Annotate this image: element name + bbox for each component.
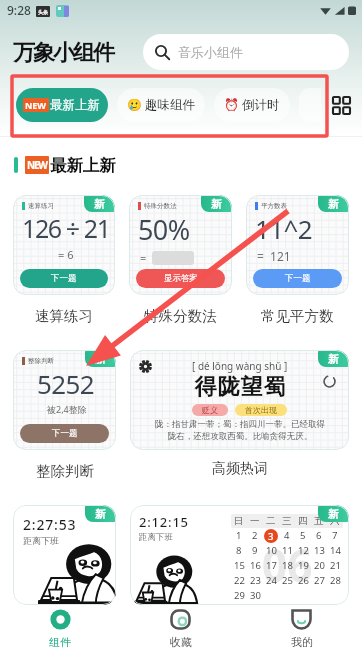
staticText: 15 xyxy=(234,559,245,572)
staticText: = 121 xyxy=(257,248,291,264)
staticText: 7 xyxy=(332,529,338,542)
staticText: 19 xyxy=(298,559,309,572)
staticText: 贬义 xyxy=(202,405,218,415)
staticText: 13 xyxy=(314,544,325,557)
button[interactable]: 新 xyxy=(13,350,116,450)
staticText: 速算练习 xyxy=(28,202,54,210)
staticText: 音乐小组件 xyxy=(178,44,243,60)
staticText: 高频热词 xyxy=(212,460,268,478)
button[interactable]: 新 xyxy=(13,505,116,605)
staticText: 18 xyxy=(282,559,293,572)
button[interactable]: 组件 xyxy=(0,605,120,653)
staticText: 常见平方数 xyxy=(261,307,334,325)
staticText: 趣味组件 xyxy=(145,97,195,113)
staticText: 126 ÷ 21 xyxy=(22,211,108,245)
staticText: 9:28 xyxy=(7,2,31,18)
button[interactable]: NEW xyxy=(16,88,108,122)
staticText: 新 xyxy=(95,507,106,521)
staticText: 11 xyxy=(282,544,293,557)
button[interactable]: 显示答案 xyxy=(136,269,225,288)
staticText: 平方数表 xyxy=(261,202,287,210)
staticText: 26 xyxy=(298,574,309,587)
staticText: 得陇望蜀 xyxy=(194,373,286,401)
staticText: 距离下班 xyxy=(23,535,59,546)
staticText: 新 xyxy=(328,507,339,521)
button[interactable]: 2:12:15 xyxy=(130,505,349,605)
staticText: 4 xyxy=(284,529,290,542)
staticText: 速算练习 xyxy=(35,307,93,325)
staticText: 头条 xyxy=(38,9,48,15)
staticText: 25 xyxy=(282,574,293,587)
staticText: = 6 xyxy=(58,247,74,262)
staticText: 五 xyxy=(314,515,324,527)
staticText: 整除判断 xyxy=(28,357,54,365)
button[interactable]: 下一题 xyxy=(20,424,109,443)
staticText: 9 xyxy=(252,544,258,557)
button[interactable]: 新 xyxy=(13,195,115,295)
staticText: 27 xyxy=(314,574,325,587)
staticText: 整除判断 xyxy=(36,462,94,480)
staticText: 5 xyxy=(300,529,306,542)
staticText: 下一题 xyxy=(51,273,77,284)
button[interactable]: 我的 xyxy=(241,605,362,653)
staticText: 12 xyxy=(298,544,309,557)
staticText: 06 xyxy=(262,535,313,595)
staticText: 14 xyxy=(330,544,341,557)
staticText: 3 xyxy=(268,530,274,543)
staticText: 陇：指甘肃一带；蜀：指四川一带。已经取得 陇右，还想攻取西蜀。比喻贪得无厌。 xyxy=(155,419,325,441)
button[interactable]: All categories xyxy=(324,88,358,122)
staticText: 8 xyxy=(236,544,242,557)
staticText: 特殊分数法 xyxy=(144,202,177,210)
staticText: 日 xyxy=(234,515,244,527)
staticText: 距离下班 xyxy=(139,532,173,543)
button[interactable]: 新 xyxy=(130,350,349,450)
staticText: 🥲 xyxy=(127,98,142,112)
staticText: 四 xyxy=(298,515,308,527)
staticText: 6 xyxy=(316,529,322,542)
staticText: ⏰ xyxy=(224,98,239,112)
staticText: 2:12:15 xyxy=(139,513,189,531)
staticText: 特殊分数法 xyxy=(144,307,217,325)
staticText: 新 xyxy=(95,352,106,366)
staticText: 新 xyxy=(94,197,105,211)
staticText: 2:27:53 xyxy=(23,515,77,534)
button[interactable]: 下一题 xyxy=(20,269,108,288)
button[interactable]: 新 xyxy=(129,195,232,295)
button[interactable]: 音乐小组件 xyxy=(143,34,349,70)
staticText: 下一题 xyxy=(285,273,311,284)
staticText: 22 xyxy=(234,574,245,587)
staticText: 29 xyxy=(234,589,245,602)
staticText: 21 xyxy=(330,559,341,572)
staticText: 30 xyxy=(250,589,261,602)
button[interactable]: ⏰ xyxy=(214,88,290,122)
staticText: 新 xyxy=(328,197,339,211)
staticText: 28 xyxy=(330,574,341,587)
staticText: 最新上新 xyxy=(50,155,116,176)
staticText: 5252 xyxy=(37,366,95,401)
staticText: 六 xyxy=(330,515,340,527)
staticText: = xyxy=(140,250,147,265)
button[interactable]: 新 xyxy=(246,195,349,295)
button[interactable]: 收藏 xyxy=(120,605,241,653)
staticText: NEW xyxy=(27,158,47,172)
staticText: 显示答案 xyxy=(164,273,198,284)
staticText: 1 xyxy=(236,529,242,542)
staticText: 2 xyxy=(252,529,258,542)
staticText: 一 xyxy=(250,515,260,527)
button[interactable]: 下一题 xyxy=(253,269,342,288)
staticText: [ dé lǒng wàng shǔ ] xyxy=(192,359,288,373)
staticText: 20 xyxy=(314,559,325,572)
staticText: 24 xyxy=(266,574,277,587)
staticText: 被2,4整除 xyxy=(47,403,87,415)
staticText: 最新上新 xyxy=(50,97,100,113)
staticText: 10 xyxy=(266,544,277,557)
staticText: 下一题 xyxy=(52,428,78,439)
staticText: 11^2 xyxy=(255,211,313,246)
staticText: 组件 xyxy=(49,635,71,649)
staticText: 首次出现 xyxy=(245,405,277,415)
staticText: 万象小组件 xyxy=(14,39,114,67)
staticText: 新 xyxy=(328,352,339,366)
button[interactable]: 🥲 xyxy=(117,88,205,122)
staticText: 23 xyxy=(250,574,261,587)
staticText: 二 xyxy=(266,515,276,527)
